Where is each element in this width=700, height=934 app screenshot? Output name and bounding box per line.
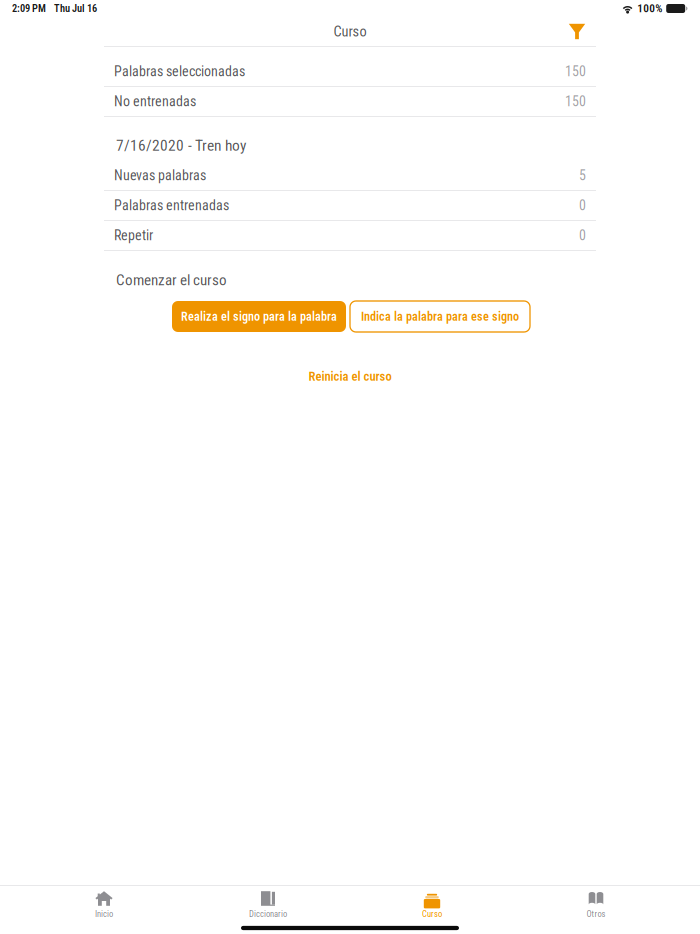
button[interactable]: Diccionario	[186, 887, 350, 921]
staticText: Comenzar el curso	[116, 271, 227, 289]
staticText: Curso	[333, 23, 366, 40]
staticText: 7/16/2020 - Tren hoy	[116, 136, 246, 154]
staticText: 0	[579, 227, 586, 244]
button[interactable]: Palabras seleccionadas	[104, 57, 596, 87]
staticText: Reinicia el curso	[308, 369, 391, 384]
staticText: 0	[579, 197, 586, 214]
staticText: Diccionario	[249, 909, 287, 919]
staticText: Realiza el signo para la palabra	[181, 309, 337, 324]
staticText: Thu Jul 16	[54, 2, 97, 15]
staticText: Indica la palabra para ese signo	[361, 309, 519, 324]
button[interactable]: Repetir	[104, 221, 596, 251]
button[interactable]: Palabras entrenadas	[104, 191, 596, 221]
staticText: Repetir	[114, 227, 153, 244]
staticText: No entrenadas	[114, 93, 196, 110]
staticText: Otros	[586, 909, 605, 919]
button[interactable]: Inicio	[22, 887, 186, 921]
staticText: Nuevas palabras	[114, 167, 206, 184]
staticText: Palabras entrenadas	[114, 197, 229, 214]
button[interactable]: No entrenadas	[104, 87, 596, 117]
button[interactable]: Nuevas palabras	[104, 161, 596, 191]
staticText: 100%	[637, 2, 662, 15]
staticText: 5	[579, 167, 586, 184]
button[interactable]: Filtrar	[560, 17, 594, 46]
staticText: Curso	[422, 909, 442, 919]
staticText: Inicio	[95, 909, 113, 919]
button[interactable]: Reinicia el curso	[104, 370, 596, 383]
staticText: 150	[565, 93, 586, 110]
staticText: Palabras seleccionadas	[114, 63, 245, 80]
button[interactable]: Indica la palabra para ese signo	[350, 301, 530, 332]
button[interactable]: Otros	[514, 887, 678, 921]
staticText: 150	[565, 63, 586, 80]
button[interactable]: Realiza el signo para la palabra	[172, 301, 346, 332]
staticText: 2:09 PM	[12, 2, 46, 15]
button[interactable]: Curso	[350, 887, 514, 921]
